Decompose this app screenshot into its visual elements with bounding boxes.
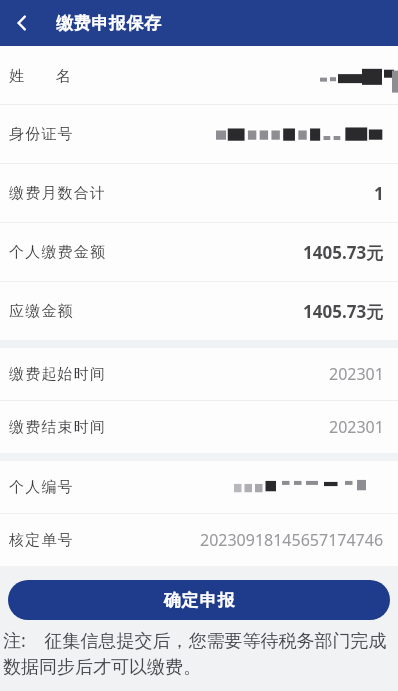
staticText: 缴费结束时间 bbox=[9, 418, 107, 437]
staticText: 个人缴费金额 bbox=[9, 243, 107, 262]
staticText: 姓 名 bbox=[9, 65, 73, 85]
button[interactable]: 身份证号 bbox=[0, 105, 398, 163]
staticText: 1 bbox=[374, 182, 384, 205]
button[interactable]: 缴费起始时间 bbox=[0, 348, 398, 400]
button[interactable]: 个人缴费金额 bbox=[0, 223, 398, 281]
staticText: 202301 bbox=[329, 416, 384, 438]
staticText: 1405.73元 bbox=[303, 300, 384, 323]
staticText: 注: 征集信息提交后，您需要等待税务部门完成数据同步后才可以缴费。 bbox=[3, 628, 395, 679]
button[interactable]: 缴费月数合计 bbox=[0, 164, 398, 222]
staticText: 身份证号 bbox=[9, 125, 74, 144]
button[interactable]: 应缴金额 bbox=[0, 282, 398, 340]
staticText: 确定申报 bbox=[163, 590, 235, 611]
staticText: 1405.73元 bbox=[303, 241, 384, 264]
staticText: 20230918145657174746 bbox=[200, 529, 384, 551]
staticText: 缴费起始时间 bbox=[9, 365, 107, 384]
button[interactable]: 核定单号 bbox=[0, 514, 398, 566]
button[interactable]: 姓 名 bbox=[0, 46, 398, 104]
staticText: 应缴金额 bbox=[9, 302, 74, 321]
button[interactable]: 个人编号 bbox=[0, 461, 398, 513]
staticText: 缴费申报保存 bbox=[56, 13, 162, 34]
button[interactable]: 确定申报 bbox=[8, 580, 390, 620]
staticText: 202301 bbox=[329, 363, 384, 385]
button[interactable]: Back bbox=[0, 1, 44, 45]
button[interactable]: 缴费结束时间 bbox=[0, 401, 398, 453]
staticText: 核定单号 bbox=[9, 531, 74, 550]
staticText: 缴费月数合计 bbox=[9, 184, 107, 203]
staticText: 个人编号 bbox=[9, 478, 74, 497]
